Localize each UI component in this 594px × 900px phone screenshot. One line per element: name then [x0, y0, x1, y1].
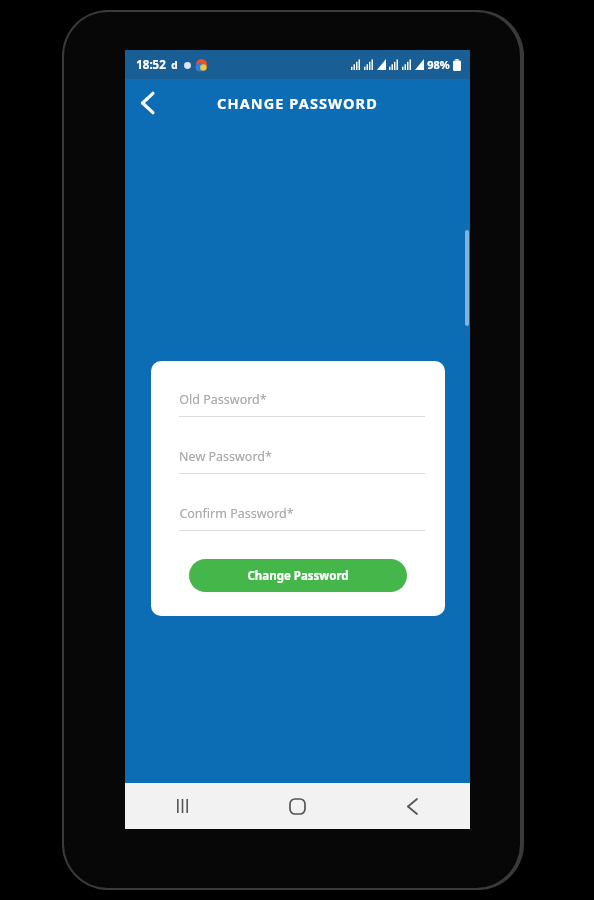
staticText: 18:52: [136, 57, 166, 73]
staticText: Old Password*: [179, 391, 267, 408]
button[interactable]: Back: [125, 81, 169, 125]
button[interactable]: Home: [240, 783, 355, 829]
button[interactable]: Confirm Password*: [179, 505, 425, 531]
button[interactable]: Recents: [125, 783, 240, 829]
staticText: New Password*: [179, 448, 272, 465]
staticText: CHANGE PASSWORD: [217, 93, 378, 113]
button[interactable]: Change Password: [189, 559, 407, 592]
button[interactable]: Back: [355, 783, 470, 829]
staticText: 98%: [427, 57, 450, 72]
button[interactable]: New Password*: [179, 448, 425, 474]
staticText: d: [171, 58, 178, 72]
staticText: Confirm Password*: [179, 505, 294, 522]
button[interactable]: Old Password*: [179, 391, 425, 417]
staticText: Change Password: [247, 568, 349, 584]
